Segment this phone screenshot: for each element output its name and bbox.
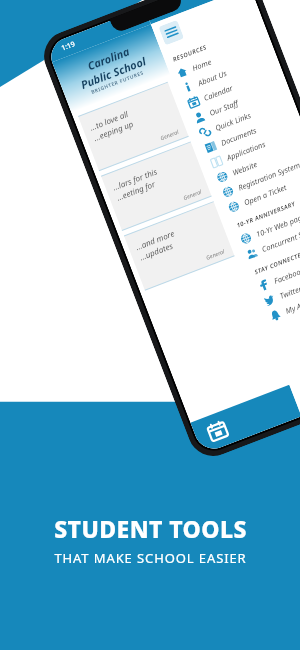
staticText: Twitter [278, 283, 300, 301]
button[interactable]: Facebook [250, 244, 300, 297]
staticText: Carolina [85, 43, 132, 73]
staticText: Public School [78, 53, 148, 92]
staticText: General [182, 187, 203, 201]
button[interactable]: Calendar [180, 61, 284, 114]
staticText: Open a Ticket [242, 182, 288, 207]
button[interactable]: Calendar [190, 385, 300, 454]
staticText: …and more …updates [134, 227, 180, 262]
button[interactable]: Quick Links [191, 91, 296, 144]
staticText: RESOURCES [172, 43, 208, 63]
button[interactable]: About Us [174, 46, 279, 99]
staticText: 1:19 [60, 39, 77, 54]
staticText: …to love all …eeping up [88, 107, 135, 143]
button[interactable]: 10-Yr Web page [232, 197, 300, 250]
staticText: About Us [196, 68, 228, 88]
staticText: Applications [225, 139, 267, 163]
staticText: Documents [219, 125, 258, 148]
button[interactable]: Concurrent Session Sc… [238, 212, 300, 265]
button[interactable]: Twitter [256, 259, 300, 312]
staticText: General [159, 128, 180, 141]
staticText: …lars for this …eeting for [111, 165, 163, 203]
staticText: General [205, 247, 226, 261]
staticText: STAY CONNECTED! [253, 249, 300, 276]
staticText: THAT MAKE SCHOOL EASIER [54, 549, 247, 567]
staticText: BRIGHTER FUTURES [90, 69, 145, 96]
staticText: Registration System [237, 160, 300, 193]
staticText: Calendar [202, 82, 235, 103]
staticText: Quick Links [214, 110, 253, 133]
button[interactable]: Website [208, 136, 300, 189]
staticText: Website [231, 159, 259, 178]
button[interactable]: Home [168, 31, 273, 84]
staticText: Facebook [272, 265, 300, 286]
button[interactable]: Our Staff [185, 76, 290, 129]
button[interactable]: My Alerts [261, 274, 300, 327]
staticText: My Alerts [284, 295, 300, 316]
button[interactable]: Documents [197, 106, 300, 159]
button[interactable]: …lars for this …eeting for [101, 142, 211, 230]
button[interactable]: …to love all …eeping up [78, 82, 189, 171]
staticText: 10-Yr Web page [254, 211, 300, 239]
button[interactable]: …and more …updates [124, 202, 234, 290]
staticText: STUDENT TOOLS [54, 513, 247, 544]
staticText: Home [191, 57, 213, 73]
button[interactable]: Open a Ticket [220, 166, 300, 218]
button[interactable]: Registration System [214, 151, 300, 204]
staticText: 10-YR ANNIVERSARY [235, 200, 297, 230]
button[interactable]: Menu [158, 20, 184, 45]
staticText: Concurrent Session Sc… [260, 216, 300, 254]
staticText: Our Staff [208, 97, 240, 118]
button[interactable]: Applications [203, 121, 300, 174]
